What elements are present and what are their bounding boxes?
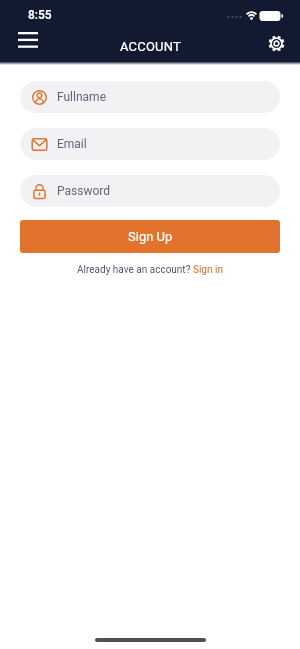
staticText: Fullname: [57, 90, 106, 104]
staticText: ACCOUNT: [120, 39, 181, 54]
staticText: Sign Up: [128, 229, 173, 244]
staticText: 8:55: [28, 8, 52, 22]
staticText: Email: [57, 137, 87, 151]
button[interactable]: [259, 26, 293, 60]
button[interactable]: Password: [20, 175, 280, 207]
button[interactable]: Email: [20, 128, 280, 160]
button[interactable]: Sign Up: [20, 220, 280, 253]
staticText: Already have an account?: [77, 264, 193, 276]
staticText: Password: [57, 184, 111, 198]
button[interactable]: Sign in: [193, 264, 223, 276]
button[interactable]: [12, 26, 44, 58]
button[interactable]: Fullname: [20, 81, 280, 113]
